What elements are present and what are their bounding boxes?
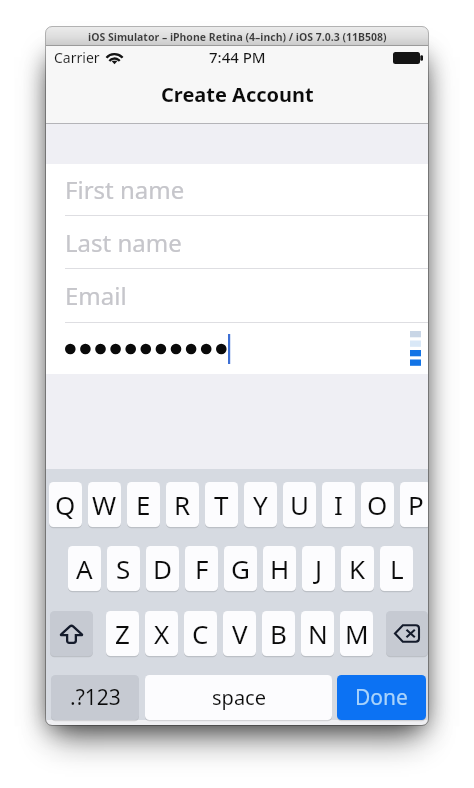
staticText: Email: [65, 279, 127, 312]
button[interactable]: Shift: [50, 611, 93, 656]
staticText: F: [195, 551, 209, 586]
staticText: J: [315, 551, 323, 586]
button[interactable]: T: [205, 482, 238, 527]
button[interactable]: .?123: [51, 675, 139, 720]
staticText: P: [408, 487, 424, 522]
button[interactable]: H: [263, 546, 296, 591]
staticText: C: [192, 616, 209, 651]
button[interactable]: G: [224, 546, 257, 591]
button[interactable]: W: [88, 482, 121, 527]
button[interactable]: space: [145, 675, 332, 720]
staticText: R: [174, 487, 191, 522]
staticText: V: [232, 616, 248, 651]
button[interactable]: First name: [46, 164, 428, 215]
staticText: .?123: [70, 683, 121, 712]
button[interactable]: N: [301, 611, 334, 656]
staticText: First name: [65, 173, 185, 206]
staticText: M: [345, 616, 369, 651]
staticText: Done: [355, 683, 408, 712]
button[interactable]: Email: [46, 269, 428, 322]
staticText: W: [92, 487, 117, 522]
button[interactable]: Last name: [46, 216, 428, 268]
button[interactable]: P: [400, 482, 428, 527]
staticText: H: [270, 551, 290, 586]
staticText: Z: [115, 616, 130, 651]
button[interactable]: Y: [244, 482, 277, 527]
staticText: B: [270, 616, 287, 651]
staticText: G: [231, 551, 250, 586]
staticText: I: [334, 487, 343, 522]
button[interactable]: Done: [337, 675, 426, 720]
button[interactable]: E: [127, 482, 160, 527]
staticText: T: [214, 487, 229, 522]
staticText: iOS Simulator – iPhone Retina (4–inch) /…: [88, 30, 387, 44]
staticText: L: [390, 551, 404, 586]
button[interactable]: D: [146, 546, 179, 591]
button[interactable]: X: [145, 611, 178, 656]
button[interactable]: O: [361, 482, 394, 527]
button[interactable]: B: [262, 611, 295, 656]
staticText: Carrier: [54, 48, 100, 67]
button[interactable]: K: [341, 546, 374, 591]
button[interactable]: Q: [49, 482, 82, 527]
button[interactable]: Z: [106, 611, 139, 656]
staticText: S: [116, 551, 131, 586]
button[interactable]: A: [68, 546, 101, 591]
staticText: K: [349, 551, 366, 586]
button[interactable]: I: [322, 482, 355, 527]
staticText: D: [153, 551, 172, 586]
staticText: Last name: [65, 226, 182, 259]
button[interactable]: U: [283, 482, 316, 527]
staticText: O: [367, 487, 388, 522]
staticText: N: [308, 616, 328, 651]
button[interactable]: J: [302, 546, 335, 591]
staticText: Y: [253, 487, 268, 522]
button[interactable]: F: [185, 546, 218, 591]
button[interactable]: C: [184, 611, 217, 656]
staticText: E: [136, 487, 151, 522]
staticText: X: [154, 616, 170, 651]
button[interactable]: Backspace: [386, 611, 428, 656]
staticText: Create Account: [161, 81, 314, 108]
button[interactable]: S: [107, 546, 140, 591]
button[interactable]: M: [340, 611, 373, 656]
staticText: U: [290, 487, 310, 522]
button[interactable]: [46, 323, 428, 374]
button[interactable]: V: [223, 611, 256, 656]
button[interactable]: R: [166, 482, 199, 527]
staticText: 7:44 PM: [209, 47, 266, 67]
button[interactable]: L: [380, 546, 413, 591]
staticText: A: [76, 551, 93, 586]
staticText: space: [212, 684, 266, 711]
staticText: Q: [55, 487, 76, 522]
